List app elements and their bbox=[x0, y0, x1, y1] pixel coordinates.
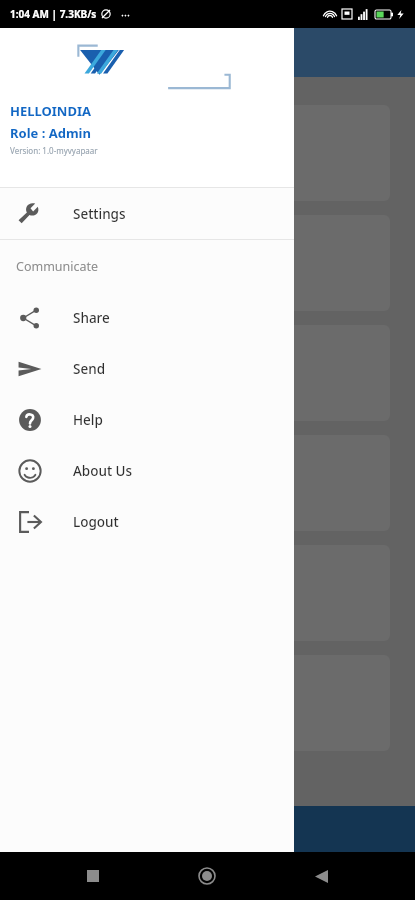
staticText: Invoices bbox=[177, 170, 229, 188]
button[interactable]: About Us bbox=[0, 445, 294, 496]
staticText: Send bbox=[73, 360, 106, 378]
staticText: About Us bbox=[73, 462, 133, 480]
button[interactable]: Logout bbox=[0, 496, 294, 547]
button[interactable]: Back bbox=[301, 856, 341, 896]
staticText: Communicate bbox=[16, 258, 99, 275]
staticText: 1:04 AM | 7.3KB/s bbox=[10, 7, 97, 21]
staticText: Logout bbox=[73, 513, 119, 531]
button[interactable]: Home bbox=[187, 856, 227, 896]
button[interactable]: Help bbox=[0, 394, 294, 445]
button[interactable]: Commission bbox=[16, 655, 390, 751]
button[interactable]: Route bbox=[16, 325, 390, 421]
button[interactable]: Share bbox=[0, 292, 294, 343]
staticText: Settings bbox=[73, 205, 126, 223]
staticText: Role : Admin bbox=[10, 124, 91, 142]
staticText: Share bbox=[73, 309, 110, 327]
staticText: Version: 1.0-myvyapaar bbox=[10, 145, 98, 156]
staticText: HELLOINDIA bbox=[10, 102, 91, 120]
button[interactable]: Invoices bbox=[16, 105, 390, 201]
button[interactable]: Orders bbox=[16, 435, 390, 531]
button[interactable]: Send bbox=[0, 343, 294, 394]
staticText: Help bbox=[73, 411, 103, 429]
button[interactable]: Customer bbox=[16, 215, 390, 311]
button[interactable]: Settings bbox=[0, 188, 294, 239]
button[interactable]: Recent apps bbox=[73, 856, 113, 896]
staticText: ··· bbox=[121, 7, 130, 22]
button[interactable]: Purchases bbox=[16, 545, 390, 641]
